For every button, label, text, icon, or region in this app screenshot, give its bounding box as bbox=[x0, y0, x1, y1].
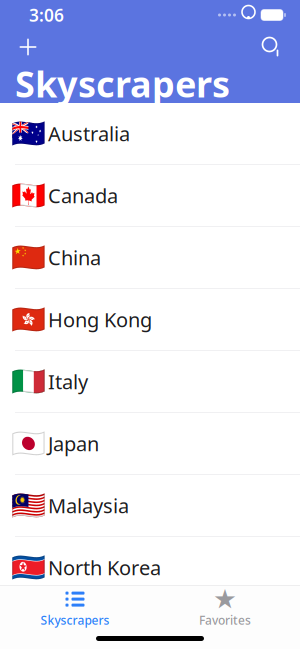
button[interactable]: 🇯🇵 bbox=[0, 413, 300, 475]
staticText: Malaysia bbox=[48, 492, 129, 519]
button[interactable]: 🇰🇵 bbox=[0, 537, 300, 599]
staticText: 🇭🇰 bbox=[11, 303, 46, 335]
staticText: 🇲🇾 bbox=[11, 489, 46, 521]
staticText: 🇸🇬 bbox=[11, 613, 46, 645]
staticText: China bbox=[48, 244, 101, 271]
staticText: Skyscrapers bbox=[15, 60, 230, 107]
staticText: 🇮🇹 bbox=[11, 365, 46, 397]
button[interactable]: 🇦🇺 bbox=[0, 103, 300, 165]
staticText: Favorites bbox=[199, 612, 251, 628]
staticText: 🇨🇳 bbox=[11, 241, 46, 273]
staticText: Japan bbox=[48, 430, 99, 457]
button[interactable]: 🇸🇬 bbox=[0, 599, 300, 649]
button[interactable]: 🇨🇦 bbox=[0, 165, 300, 227]
staticText: Australia bbox=[48, 120, 130, 147]
staticText: Canada bbox=[48, 182, 118, 209]
staticText: ★ bbox=[213, 584, 237, 614]
button[interactable]: 🇮🇹 bbox=[0, 351, 300, 413]
staticText: 🇨🇦 bbox=[11, 179, 46, 211]
staticText: 🇦🇺 bbox=[11, 117, 46, 149]
staticText: Skyscrapers bbox=[40, 612, 109, 628]
button[interactable]: Add bbox=[6, 30, 50, 64]
staticText: 🇯🇵 bbox=[11, 427, 46, 459]
staticText: North Korea bbox=[48, 554, 161, 581]
button[interactable]: Search bbox=[250, 30, 294, 64]
button[interactable]: 🇭🇰 bbox=[0, 289, 300, 351]
staticText: Singapore bbox=[48, 616, 142, 643]
staticText: Hong Kong bbox=[48, 306, 152, 333]
staticText: 🇰🇵 bbox=[11, 551, 46, 583]
button[interactable]: ★ bbox=[150, 587, 300, 631]
button[interactable]: 🇨🇳 bbox=[0, 227, 300, 289]
staticText: 3:06 bbox=[29, 3, 64, 26]
button[interactable]: Skyscrapers bbox=[0, 587, 150, 631]
staticText: Italy bbox=[48, 368, 88, 395]
button[interactable]: 🇲🇾 bbox=[0, 475, 300, 537]
